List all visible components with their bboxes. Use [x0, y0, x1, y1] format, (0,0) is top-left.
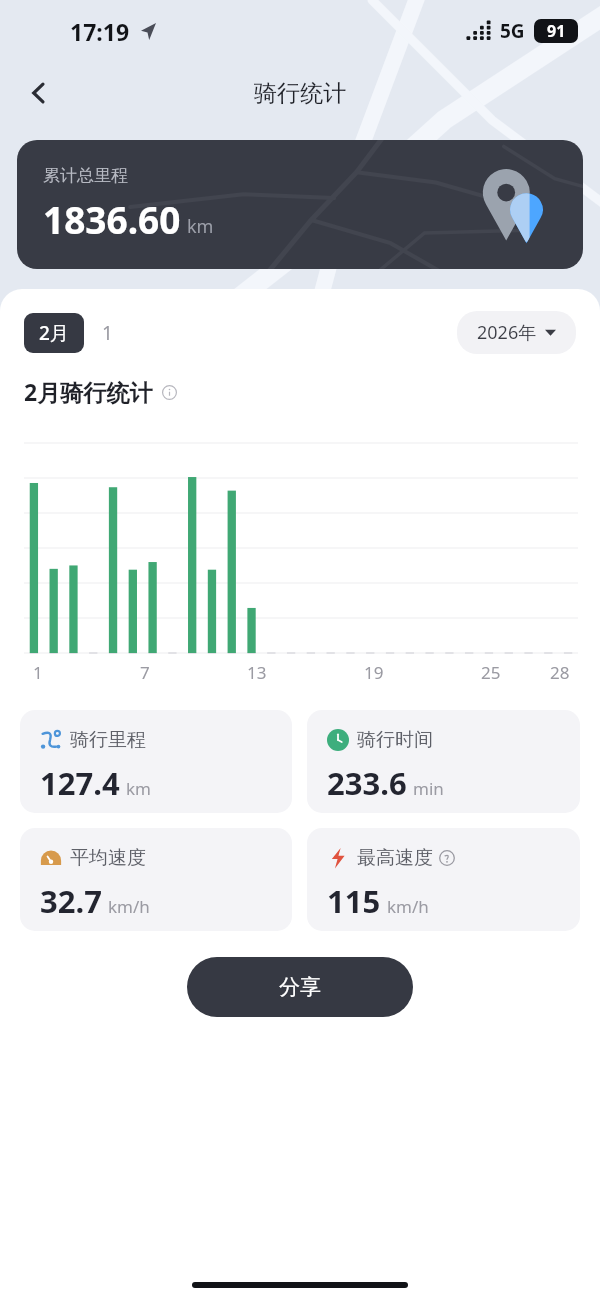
button[interactable]: 分享: [187, 957, 413, 1017]
button[interactable]: 平均速度: [20, 828, 292, 931]
staticText: 32.7: [40, 880, 102, 922]
button[interactable]: 信息: [159, 382, 179, 402]
staticText: 127.4: [40, 762, 120, 804]
staticText: 19: [364, 661, 384, 684]
staticText: 骑行里程: [70, 728, 146, 752]
staticText: 骑行时间: [357, 728, 433, 752]
staticText: 13: [247, 661, 267, 684]
staticText: 91: [547, 20, 566, 42]
staticText: 17:19: [70, 16, 130, 47]
staticText: km/h: [387, 895, 429, 918]
staticText: 2月骑行统计: [24, 376, 153, 407]
button[interactable]: 最高速度: [307, 828, 580, 931]
staticText: 2月: [39, 320, 69, 346]
staticText: km/h: [108, 895, 150, 918]
button[interactable]: 2026年: [457, 311, 576, 354]
staticText: 7: [140, 661, 150, 684]
staticText: 平均速度: [70, 846, 146, 870]
button[interactable]: 骑行时间: [307, 710, 580, 813]
staticText: 累计总里程: [43, 165, 128, 186]
button[interactable]: 2月: [24, 313, 84, 353]
staticText: 1: [102, 320, 113, 346]
staticText: 1836.60: [43, 194, 181, 244]
staticText: km: [126, 777, 151, 800]
staticText: 分享: [279, 974, 321, 1000]
staticText: km: [187, 214, 214, 239]
staticText: 25: [481, 661, 501, 684]
staticText: 2026年: [477, 320, 537, 345]
staticText: min: [413, 777, 444, 800]
button[interactable]: Back: [14, 68, 64, 118]
staticText: 233.6: [327, 762, 407, 804]
staticText: 骑行统计: [254, 79, 346, 108]
button[interactable]: 骑行里程: [20, 710, 292, 813]
staticText: 115: [327, 880, 381, 922]
staticText: 最高速度: [357, 846, 433, 870]
staticText: 5G: [500, 18, 525, 44]
staticText: 1: [33, 661, 43, 684]
button[interactable]: 1: [84, 313, 131, 353]
button[interactable]: 累计总里程: [17, 140, 583, 269]
staticText: 28: [550, 661, 570, 684]
